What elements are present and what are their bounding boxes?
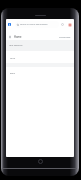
button[interactable]: Search or type a web address [15, 21, 59, 28]
staticText: Home [14, 35, 22, 39]
button[interactable]: Home [6, 33, 74, 41]
staticText: Search or type a web address [20, 23, 48, 26]
button[interactable]: Event [6, 67, 74, 79]
button[interactable]: App icon [8, 23, 11, 26]
staticText: Event [10, 72, 16, 75]
staticText: Your Shortcuts [9, 44, 23, 47]
staticText: Customize [59, 36, 71, 39]
button[interactable]: Account [68, 23, 72, 27]
button[interactable]: Voice search [61, 23, 64, 26]
staticText: To Do [10, 57, 16, 60]
button[interactable]: To Do [6, 52, 74, 64]
